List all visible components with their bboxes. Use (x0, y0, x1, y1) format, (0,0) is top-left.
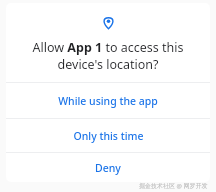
staticText: Only this time (73, 129, 144, 143)
staticText: 掘金技术社区 @ 网罗开发 (139, 182, 208, 190)
button[interactable]: Deny (6, 153, 210, 182)
other: Location (102, 16, 115, 29)
button[interactable]: While using the app (6, 83, 210, 118)
staticText: While using the app (58, 94, 158, 108)
staticText: Deny (95, 161, 121, 175)
button[interactable]: Only this time (6, 119, 210, 152)
staticText: Allow App 1 to access this device's loca… (22, 39, 194, 72)
